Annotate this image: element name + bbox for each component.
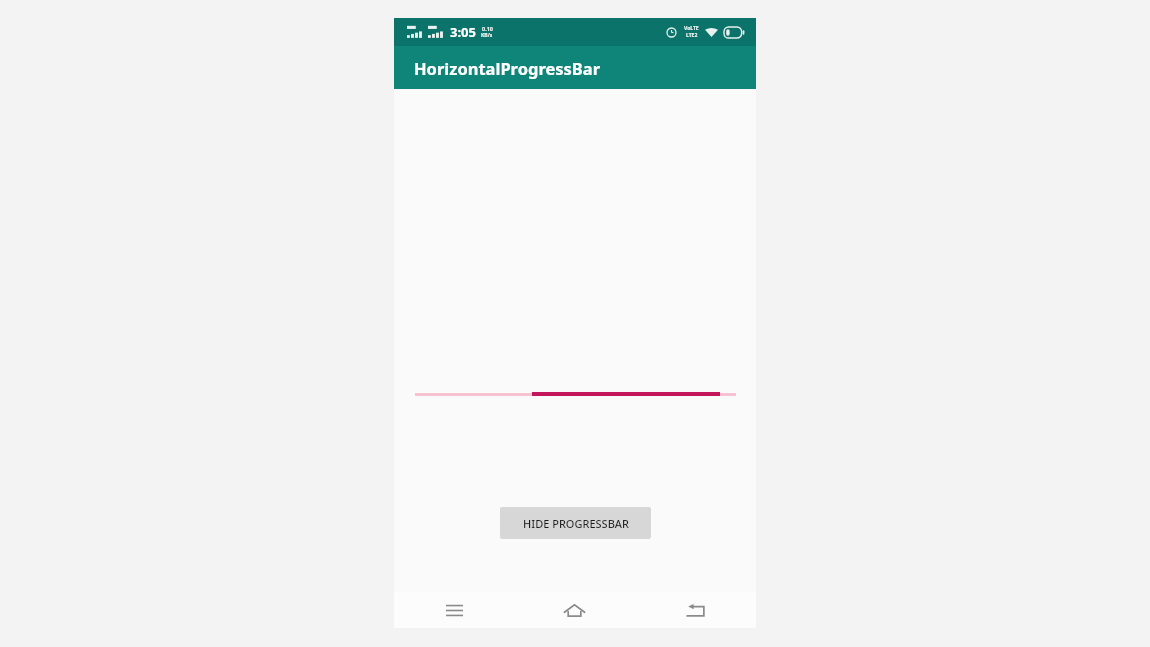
staticText: 3:05 [450,23,476,41]
button[interactable]: HIDE PROGRESSBAR [500,507,651,539]
button[interactable]: Home [514,592,635,628]
staticText: 0.10 [482,25,493,32]
staticText: LTE2 [686,32,698,39]
button[interactable]: Recent apps [394,592,514,628]
button[interactable]: Back [635,592,756,628]
staticText: HIDE PROGRESSBAR [523,516,629,531]
staticText: KB/s [481,32,493,39]
staticText: HorizontalProgressBar [414,57,601,79]
staticText: VoLTE [684,25,699,32]
